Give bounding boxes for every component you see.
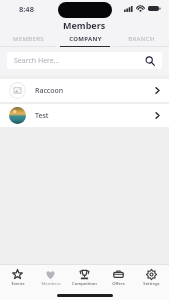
button[interactable]: BRANCH [113,35,169,47]
staticText: Raccoon [35,86,155,96]
staticText: Offers [112,281,125,287]
staticText: Members [41,281,61,287]
button[interactable]: Settings [135,265,168,291]
staticText: Search Here... [14,56,145,66]
staticText: Settings [143,281,160,287]
button[interactable]: Raccoon [0,79,169,102]
staticText: Test [35,111,155,121]
staticText: 8:48 [19,4,34,14]
button[interactable]: MEMBERS [0,35,57,47]
button[interactable]: Offers [102,265,135,291]
staticText: Members [63,19,106,31]
staticText: COMPANY [69,35,102,43]
button[interactable]: Search Here... [7,52,162,69]
button[interactable]: COMPANY [57,35,113,47]
button[interactable]: Test [0,104,169,127]
button[interactable]: Competition [68,265,101,291]
staticText: Competition [72,281,97,287]
button[interactable]: Events [1,265,34,291]
staticText: Events [11,281,25,287]
button[interactable]: Members [34,265,67,291]
other: Search [145,56,155,66]
staticText: BRANCH [128,35,155,43]
staticText: MEMBERS [13,35,44,43]
